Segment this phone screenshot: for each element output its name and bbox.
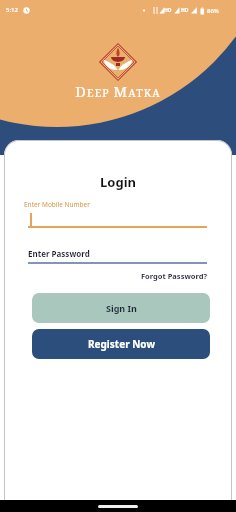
staticText: Enter Password (28, 248, 90, 259)
staticText: 5:12 (6, 6, 18, 14)
button[interactable]: Register Now (32, 329, 210, 359)
staticText: HD (164, 7, 172, 14)
staticText: HD (181, 7, 189, 14)
button[interactable]: Forgot Password? (141, 271, 208, 281)
staticText: Login (4, 173, 232, 191)
button[interactable]: Sign In (32, 293, 210, 323)
staticText: Enter Mobile Number (24, 200, 90, 209)
staticText: Register Now (88, 337, 155, 351)
staticText: 86% (207, 7, 219, 15)
staticText: Sign In (106, 302, 137, 314)
staticText: DEEP MATKA (0, 81, 236, 101)
